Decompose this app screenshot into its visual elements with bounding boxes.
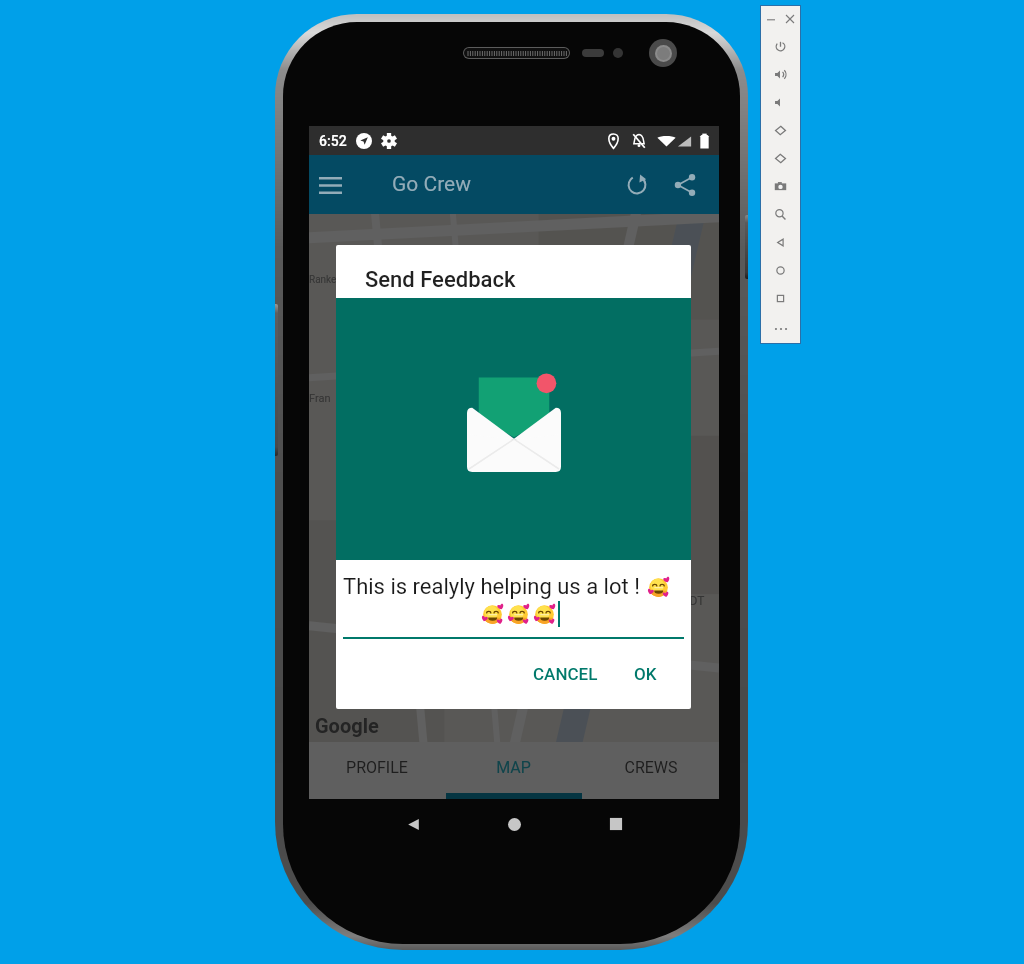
button[interactable]: Home (761, 256, 800, 284)
staticText: 6:52 (319, 133, 347, 149)
staticText: This is realyly helping us a lot ! (343, 574, 646, 600)
staticText: CANCEL (533, 664, 598, 684)
button[interactable]: Rotate left (761, 116, 800, 144)
button[interactable]: Refresh (613, 161, 661, 209)
staticText: CREWS (624, 758, 678, 777)
button[interactable]: Overview (761, 284, 800, 312)
staticText: Send Feedback (365, 267, 516, 293)
staticText: PROFILE (346, 758, 408, 777)
staticText: Rankestraße (309, 274, 365, 286)
button[interactable]: Volume up (761, 60, 800, 88)
button[interactable]: Zoom (761, 200, 800, 228)
button[interactable]: MAP (445, 742, 582, 799)
staticText: Google (315, 714, 379, 737)
button[interactable]: CANCEL (519, 652, 612, 696)
staticText: OK (634, 664, 657, 684)
button[interactable]: Open navigation drawer (309, 161, 352, 209)
button[interactable]: Back (761, 228, 800, 256)
button[interactable]: Recent apps (598, 806, 634, 842)
button[interactable]: Power (761, 32, 800, 60)
button[interactable]: Home (496, 806, 532, 842)
button[interactable]: Volume down (761, 88, 800, 116)
button[interactable]: CREWS (582, 742, 719, 799)
button[interactable]: Share (661, 161, 709, 209)
button[interactable]: PROFILE (309, 742, 445, 799)
button[interactable]: More (761, 315, 800, 343)
staticText: NDT (681, 594, 705, 608)
staticText: Fran (309, 392, 331, 405)
button[interactable]: Back (395, 806, 431, 842)
button[interactable]: Rotate right (761, 144, 800, 172)
button[interactable]: Screenshot (761, 172, 800, 200)
button[interactable]: OK (620, 652, 671, 696)
staticText: MAP (496, 758, 531, 777)
staticText: Go Crew (392, 172, 471, 197)
